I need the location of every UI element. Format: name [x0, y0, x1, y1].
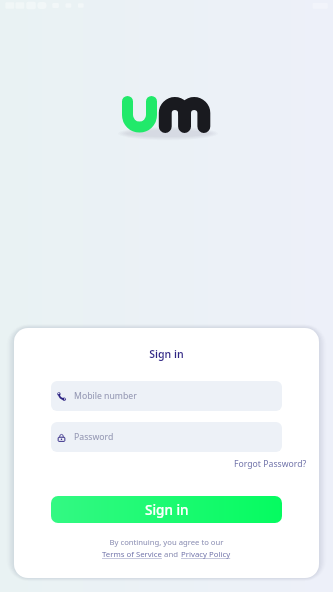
staticText: Sign in	[145, 501, 189, 519]
staticText: Mobile number	[74, 390, 137, 402]
button[interactable]: Password	[51, 422, 282, 452]
button[interactable]: Mobile number	[51, 381, 282, 411]
staticText: By continuing, you agree to our	[14, 537, 319, 547]
staticText: and	[162, 549, 181, 560]
button[interactable]: Privacy Policy	[181, 549, 231, 560]
button[interactable]: Sign in	[51, 496, 282, 523]
button[interactable]: Forgot Password?	[234, 458, 307, 470]
staticText: Sign in	[14, 347, 319, 361]
button[interactable]: Terms of Service	[102, 549, 162, 560]
staticText: Password	[74, 431, 114, 443]
